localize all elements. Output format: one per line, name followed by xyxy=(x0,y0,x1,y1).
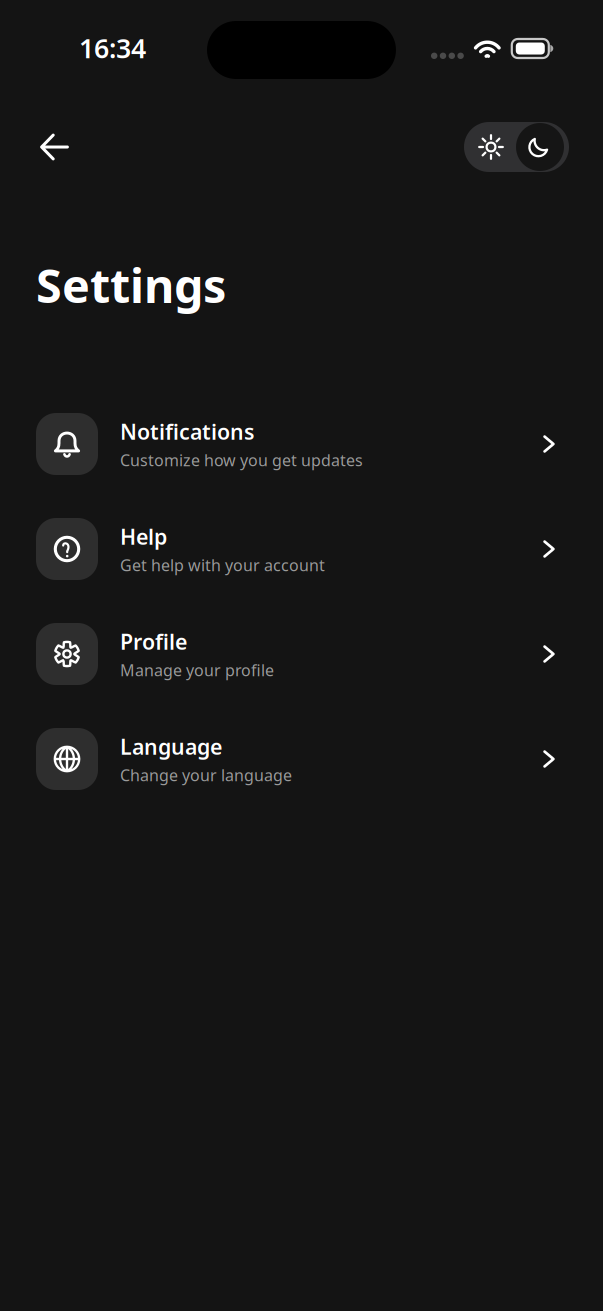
staticText: Language xyxy=(120,732,222,760)
staticText: Manage your profile xyxy=(120,659,274,681)
button[interactable]: Help xyxy=(0,518,603,580)
staticText: Settings xyxy=(36,254,226,316)
button[interactable]: Back xyxy=(26,119,83,175)
staticText: Customize how you get updates xyxy=(120,449,363,471)
button[interactable]: Profile xyxy=(0,623,603,685)
button[interactable]: Notifications xyxy=(0,413,603,475)
staticText: Profile xyxy=(120,627,187,655)
staticText: Change your language xyxy=(120,764,292,786)
staticText: Help xyxy=(120,522,167,550)
staticText: 16:34 xyxy=(79,30,146,66)
button[interactable]: Toggle dark mode xyxy=(464,122,569,172)
button[interactable]: Language xyxy=(0,728,603,790)
staticText: Notifications xyxy=(120,417,255,445)
staticText: Get help with your account xyxy=(120,554,325,576)
